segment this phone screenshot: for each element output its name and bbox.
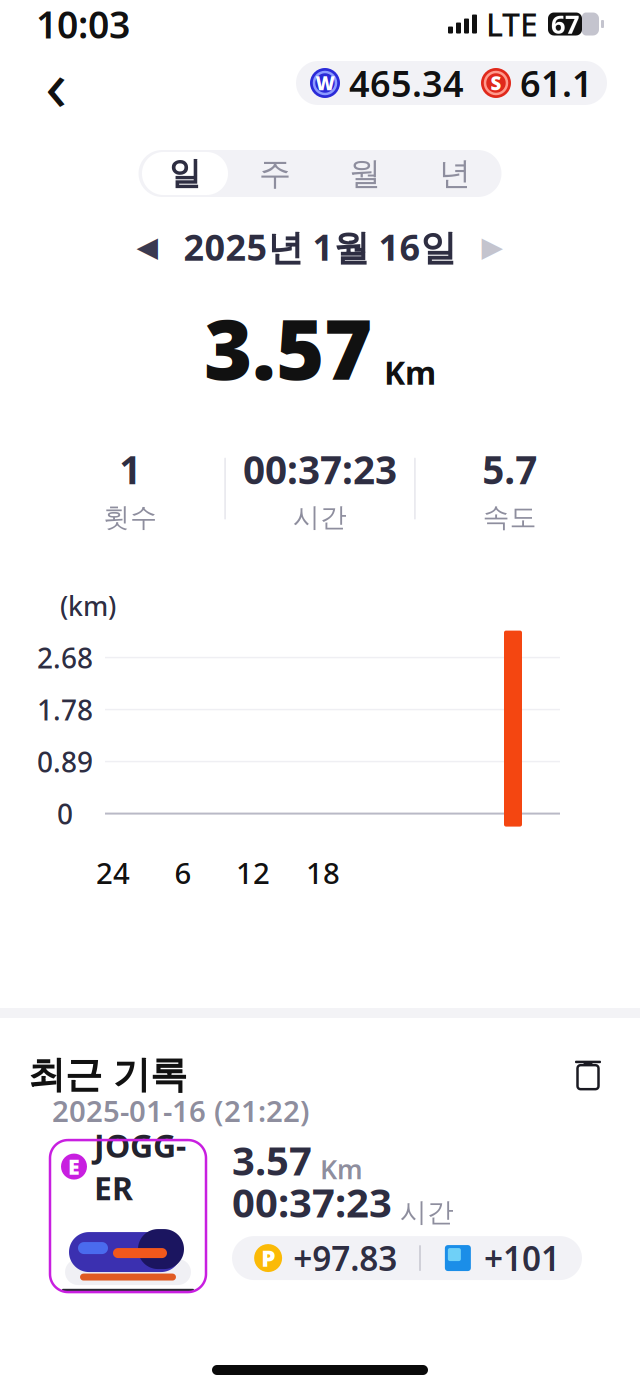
staticText: W (315, 71, 334, 95)
staticText: ▶ (481, 231, 503, 263)
staticText: 3.57 (204, 293, 372, 403)
button[interactable]: 주 (230, 150, 320, 197)
staticText: S (490, 71, 501, 95)
button[interactable]: 년 (410, 150, 500, 197)
staticText: 24 (96, 853, 130, 892)
button[interactable]: Next day (470, 227, 514, 267)
staticText: ◀ (136, 231, 158, 263)
staticText: ‹ (45, 35, 67, 131)
staticText: 1 (119, 443, 141, 495)
button[interactable]: 일 (140, 150, 230, 197)
button[interactable]: W (296, 61, 607, 105)
staticText: 2025-01-16 (21:22) (52, 1091, 310, 1130)
staticText: 6 (174, 853, 191, 892)
staticText: 18 (306, 853, 340, 892)
button[interactable]: Back (30, 57, 82, 109)
staticText: 465.34 (349, 59, 464, 107)
staticText: 00:37:23 (232, 1175, 392, 1229)
button[interactable]: 월 (320, 150, 410, 197)
staticText: 1.78 (37, 691, 93, 728)
staticText: 67 (551, 7, 579, 41)
staticText: 0.89 (37, 743, 93, 780)
staticText: 61.1 (520, 59, 593, 107)
staticText: 속도 (483, 501, 537, 534)
staticText: 년 (439, 154, 471, 193)
staticText: 2025년 1월 16일 (183, 223, 456, 271)
staticText: Km (320, 1151, 363, 1187)
staticText: 0 (57, 795, 73, 832)
staticText: +101 (484, 1236, 560, 1280)
staticText: 2.68 (37, 639, 93, 676)
staticText: P (261, 1243, 275, 1273)
staticText: 00:37:23 (243, 443, 397, 495)
staticText: 시간 (293, 501, 347, 534)
staticText: 월 (349, 154, 381, 193)
staticText: E (68, 1152, 80, 1181)
staticText: 5.7 (482, 443, 537, 495)
staticText: 12 (236, 853, 270, 892)
staticText: 시간 (400, 1196, 454, 1229)
staticText: 횟수 (103, 501, 157, 534)
staticText: 3.57 (232, 1133, 312, 1187)
button[interactable]: 2025-01-16 (21:22) (36, 1116, 604, 1326)
button[interactable]: Previous day (125, 227, 169, 267)
staticText: LTE (486, 3, 538, 45)
staticText: JOGGER (94, 1124, 186, 1209)
staticText: (km) (60, 588, 116, 623)
staticText: 주 (259, 154, 291, 193)
button[interactable]: Delete records (566, 1053, 610, 1097)
staticText: 최근 기록 (28, 1052, 187, 1098)
staticText: 10:03 (36, 0, 130, 49)
staticText: Km (384, 351, 436, 394)
staticText: +97.83 (293, 1236, 397, 1280)
staticText: 일 (169, 154, 201, 193)
